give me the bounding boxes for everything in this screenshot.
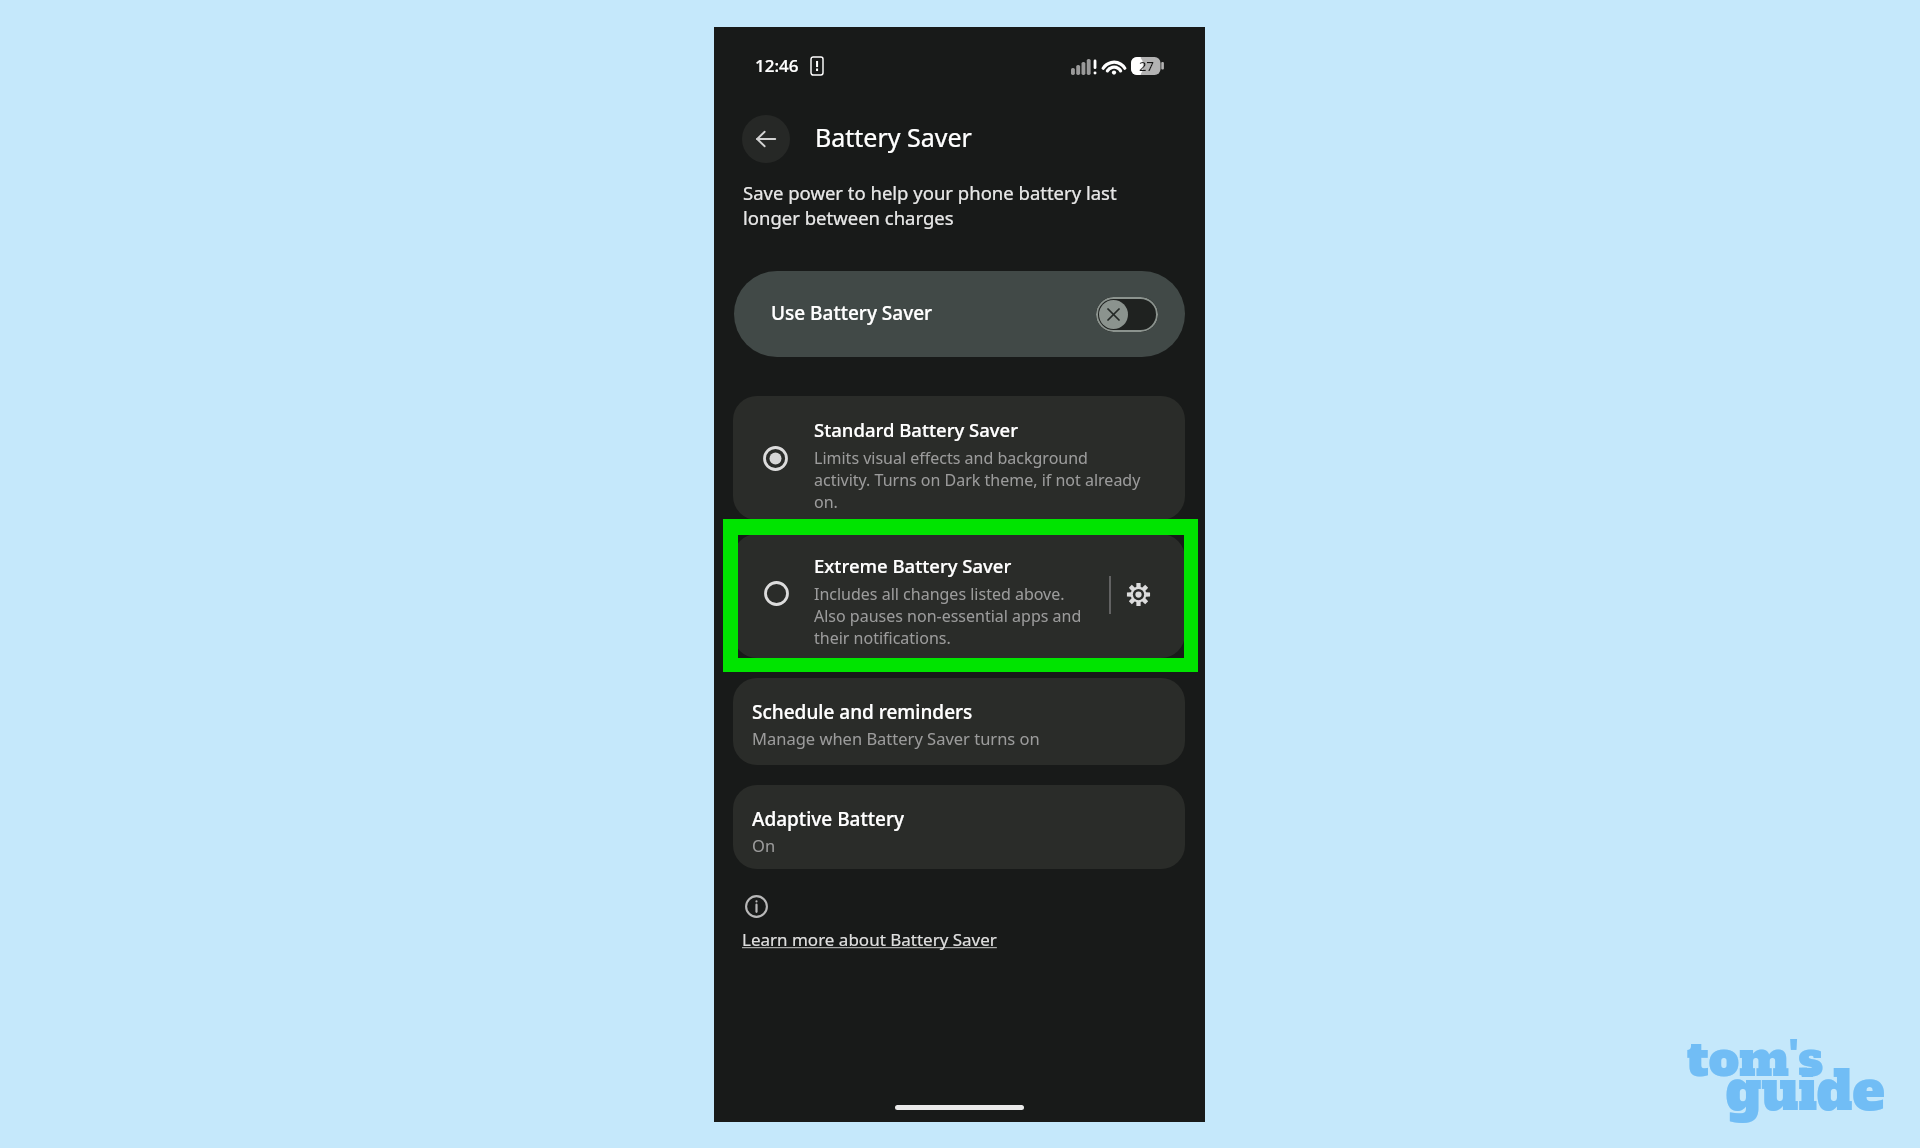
staticText: Limits visual effects and background act…	[814, 447, 1146, 513]
staticText: Schedule and reminders	[752, 699, 973, 725]
button[interactable]: Back	[742, 115, 790, 163]
button[interactable]: Use Battery Saver toggle, off	[1096, 297, 1158, 332]
staticText: 27	[1139, 57, 1154, 75]
staticText: Battery Saver	[815, 120, 972, 154]
button[interactable]: Use Battery Saver	[734, 271, 1185, 357]
button[interactable]: Extreme Battery Saver	[733, 534, 1185, 658]
button[interactable]: Adaptive Battery	[733, 785, 1185, 869]
staticText: tom's	[1687, 1026, 1824, 1092]
staticText: Adaptive Battery	[752, 806, 904, 832]
staticText: 12:46	[755, 54, 799, 77]
staticText: On	[752, 834, 776, 856]
staticText: guide	[1726, 1054, 1885, 1128]
staticText: Use Battery Saver	[771, 300, 933, 326]
button[interactable]: Schedule and reminders	[733, 678, 1185, 765]
staticText: Manage when Battery Saver turns on	[752, 727, 1040, 749]
staticText: Save power to help your phone battery la…	[743, 180, 1143, 231]
staticText: Standard Battery Saver	[814, 417, 1019, 442]
button[interactable]: Extreme Battery Saver settings	[1114, 570, 1162, 618]
button[interactable]: Standard Battery Saver	[733, 396, 1185, 520]
button[interactable]: Learn more about Battery Saver	[742, 928, 997, 951]
staticText: Extreme Battery Saver	[814, 553, 1012, 578]
staticText: Includes all changes listed above. Also …	[814, 583, 1092, 649]
